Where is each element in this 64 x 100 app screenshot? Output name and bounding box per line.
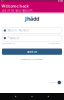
button[interactable]: SIGN IN: [2, 48, 62, 55]
staticText: Don't have an account? Register: [21, 59, 43, 60]
button[interactable]: Chat with us: [57, 80, 62, 85]
staticText: Welcome back: [2, 3, 29, 9]
button[interactable]: Remember me: [2, 43, 15, 44]
button[interactable]: Forgot password?: [48, 43, 62, 44]
staticText: Jhādd: [25, 15, 39, 22]
staticText: Forgot password?: [48, 43, 62, 44]
staticText: Log in to your account: [2, 9, 33, 12]
staticText: Password: [7, 36, 19, 40]
staticText: Remember me: [5, 43, 15, 44]
button[interactable]: Don't have an account? Register: [0, 58, 64, 61]
staticText: 9:41: [1, 0, 4, 2]
button[interactable]: Mobile Number: [2, 27, 62, 34]
staticText: SIGN IN: [27, 50, 37, 53]
staticText: Contact us: [49, 82, 56, 83]
staticText: Mobile Number: [7, 29, 29, 32]
button[interactable]: Password: [2, 35, 62, 41]
